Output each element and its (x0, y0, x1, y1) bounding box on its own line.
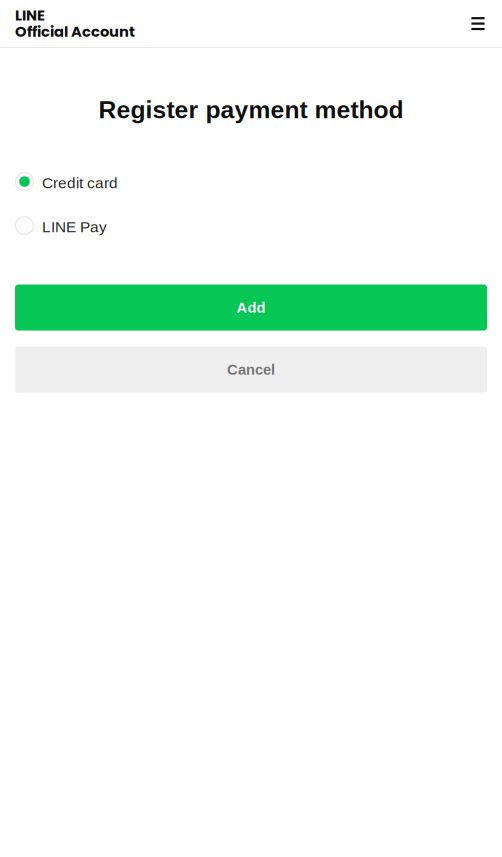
button[interactable]: Menu (463, 8, 493, 38)
button[interactable]: Cancel (15, 347, 487, 393)
staticText: Add (236, 299, 265, 316)
button[interactable]: Add (15, 285, 487, 331)
staticText: LINE Pay (42, 218, 107, 236)
staticText: Cancel (227, 361, 275, 378)
staticText: Register payment method (98, 96, 403, 124)
staticText: Official Account (15, 21, 135, 42)
staticText: LINE (15, 5, 45, 26)
staticText: Credit card (42, 174, 118, 192)
button[interactable]: Credit card (0, 160, 502, 204)
button[interactable]: LINE Pay (0, 204, 502, 248)
